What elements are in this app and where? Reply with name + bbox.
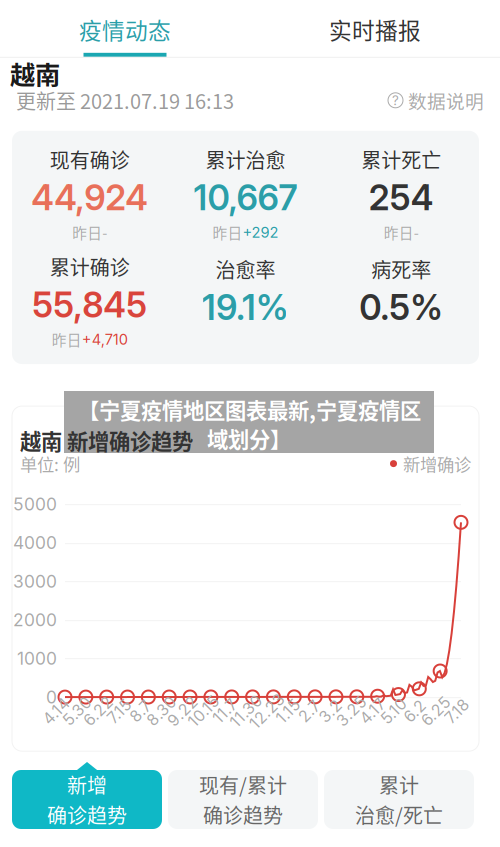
staticText: 域划分】 (207, 423, 291, 454)
staticText: 累计 (379, 770, 419, 799)
staticText: 4.14 (41, 701, 71, 721)
staticText: 越南 新增确诊趋势 (20, 425, 193, 456)
staticText: 1000 (17, 648, 57, 669)
staticText: 昨日- (72, 222, 107, 243)
staticText: 昨日 (212, 222, 242, 243)
staticText: 7.18 (443, 701, 470, 721)
staticText: 现有确诊 (50, 145, 130, 174)
staticText: 5.30 (61, 701, 94, 721)
staticText: 累计确诊 (50, 252, 130, 281)
staticText: 5000 (13, 494, 57, 515)
staticText: 治愈率 (215, 254, 275, 283)
staticText: 4.17 (358, 701, 387, 721)
staticText: 6.22 (81, 701, 115, 721)
staticText: +4,710 (82, 331, 128, 348)
staticText: 5.10 (379, 701, 408, 721)
staticText: 新增 (67, 770, 107, 799)
staticText: 254 (369, 177, 434, 219)
staticText: 3.25 (334, 701, 369, 721)
staticText: 8.7 (129, 701, 152, 721)
staticText: 新增确诊 (403, 451, 471, 476)
staticText: 9.22 (165, 701, 200, 721)
staticText: 6.25 (419, 701, 453, 721)
staticText: 7.15 (106, 701, 133, 721)
staticText: +292 (242, 223, 278, 241)
staticText: 55,845 (32, 284, 147, 326)
staticText: 1.15 (275, 701, 302, 721)
staticText: 19.1% (202, 286, 289, 328)
staticText: 11.7 (211, 701, 238, 721)
staticText: 确诊趋势 (47, 800, 127, 829)
staticText: 10,667 (193, 177, 297, 219)
staticText: 昨日- (384, 222, 419, 243)
staticText: 单位: 例 (20, 451, 80, 476)
staticText: 10.15 (185, 701, 222, 721)
staticText: 确诊趋势 (203, 800, 283, 829)
staticText: 3.2 (318, 701, 343, 721)
button[interactable]: 现有/累计 (168, 762, 318, 829)
staticText: 11.30 (227, 701, 265, 721)
staticText: 4000 (13, 532, 57, 553)
button[interactable]: ? (388, 87, 484, 114)
button[interactable]: 累计 (324, 762, 474, 829)
button[interactable]: 实时播报 (250, 13, 500, 57)
staticText: 累计死亡 (361, 145, 441, 174)
staticText: 累计治愈 (205, 145, 285, 174)
staticText: 0 (46, 687, 57, 708)
staticText: 疫情动态 (79, 13, 171, 46)
staticText: 2000 (13, 609, 57, 630)
staticText: 2.7 (298, 701, 321, 721)
staticText: 实时播报 (329, 13, 421, 46)
staticText: 3000 (13, 571, 57, 592)
staticText: 更新至 2021.07.19 16:13 (16, 86, 234, 115)
staticText: 44,924 (31, 177, 148, 219)
staticText: 病死率 (371, 254, 431, 283)
staticText: 越南 (10, 55, 60, 92)
staticText: 现有/累计 (199, 770, 287, 799)
staticText: 0.5% (359, 286, 443, 328)
staticText: 【宁夏疫情地区图表最新,宁夏疫情区 (78, 394, 421, 425)
staticText: 6.2 (403, 701, 427, 721)
staticText: 昨日 (52, 329, 82, 350)
staticText: ? (392, 92, 399, 108)
button[interactable]: 疫情动态 (0, 13, 250, 57)
staticText: 治愈/死亡 (355, 800, 443, 829)
staticText: 8.30 (144, 701, 178, 721)
staticText: 12.23 (246, 701, 288, 721)
button[interactable]: 新增 (12, 762, 162, 829)
staticText: 数据说明 (408, 87, 484, 114)
